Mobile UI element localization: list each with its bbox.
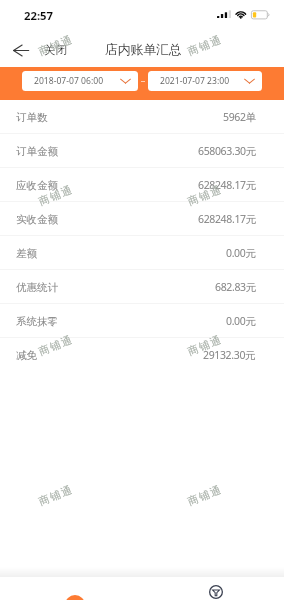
staticText: 系统抹零 xyxy=(16,315,58,328)
button[interactable]: Filter xyxy=(209,585,223,599)
button[interactable]: 差额 xyxy=(0,236,284,270)
staticText: 店内账单汇总 xyxy=(105,42,182,58)
button[interactable]: 2018-07-07 06:00 xyxy=(22,71,138,91)
button[interactable]: 减免 xyxy=(0,338,284,372)
staticText: 减免 xyxy=(16,349,37,362)
staticText: 2018-07-07 06:00 xyxy=(34,75,104,87)
staticText: 商铺通 xyxy=(186,183,224,208)
button[interactable]: 应收金额 xyxy=(0,168,284,202)
staticText: 商铺通 xyxy=(37,33,75,58)
staticText: 商铺通 xyxy=(186,33,224,58)
staticText: 商铺通 xyxy=(37,483,75,508)
staticText: 5962单 xyxy=(223,110,256,124)
other: Back xyxy=(13,45,29,56)
button[interactable]: 2021-07-07 23:00 xyxy=(148,71,262,91)
staticText: 658063.30元 xyxy=(198,144,256,158)
button[interactable]: 实收金额 xyxy=(0,202,284,236)
staticText: 0.00元 xyxy=(226,314,256,328)
staticText: 差额 xyxy=(16,247,37,260)
staticText: 682.83元 xyxy=(215,280,256,294)
staticText: 商铺通 xyxy=(37,183,75,208)
button[interactable]: Back xyxy=(0,37,77,63)
staticText: 实收金额 xyxy=(16,213,58,226)
staticText: 关闭 xyxy=(44,43,67,57)
staticText: 应收金额 xyxy=(16,179,58,192)
button[interactable]: 优惠统计 xyxy=(0,270,284,304)
staticText: 商铺通 xyxy=(186,483,224,508)
staticText: 22:57 xyxy=(24,8,54,23)
button[interactable]: Add xyxy=(65,595,85,600)
staticText: 商铺通 xyxy=(186,333,224,358)
staticText: 商铺通 xyxy=(37,333,75,358)
staticText: 628248.17元 xyxy=(198,178,256,192)
staticText: 29132.30元 xyxy=(203,348,256,362)
staticText: 订单金额 xyxy=(16,145,58,158)
staticText: 优惠统计 xyxy=(16,281,58,294)
staticText: 0.00元 xyxy=(226,246,256,260)
button[interactable]: 系统抹零 xyxy=(0,304,284,338)
staticText: 订单数 xyxy=(16,111,48,124)
staticText: 628248.17元 xyxy=(198,212,256,226)
staticText: 2021-07-07 23:00 xyxy=(160,75,230,87)
button[interactable]: 订单金额 xyxy=(0,134,284,168)
button[interactable]: 订单数 xyxy=(0,100,284,134)
